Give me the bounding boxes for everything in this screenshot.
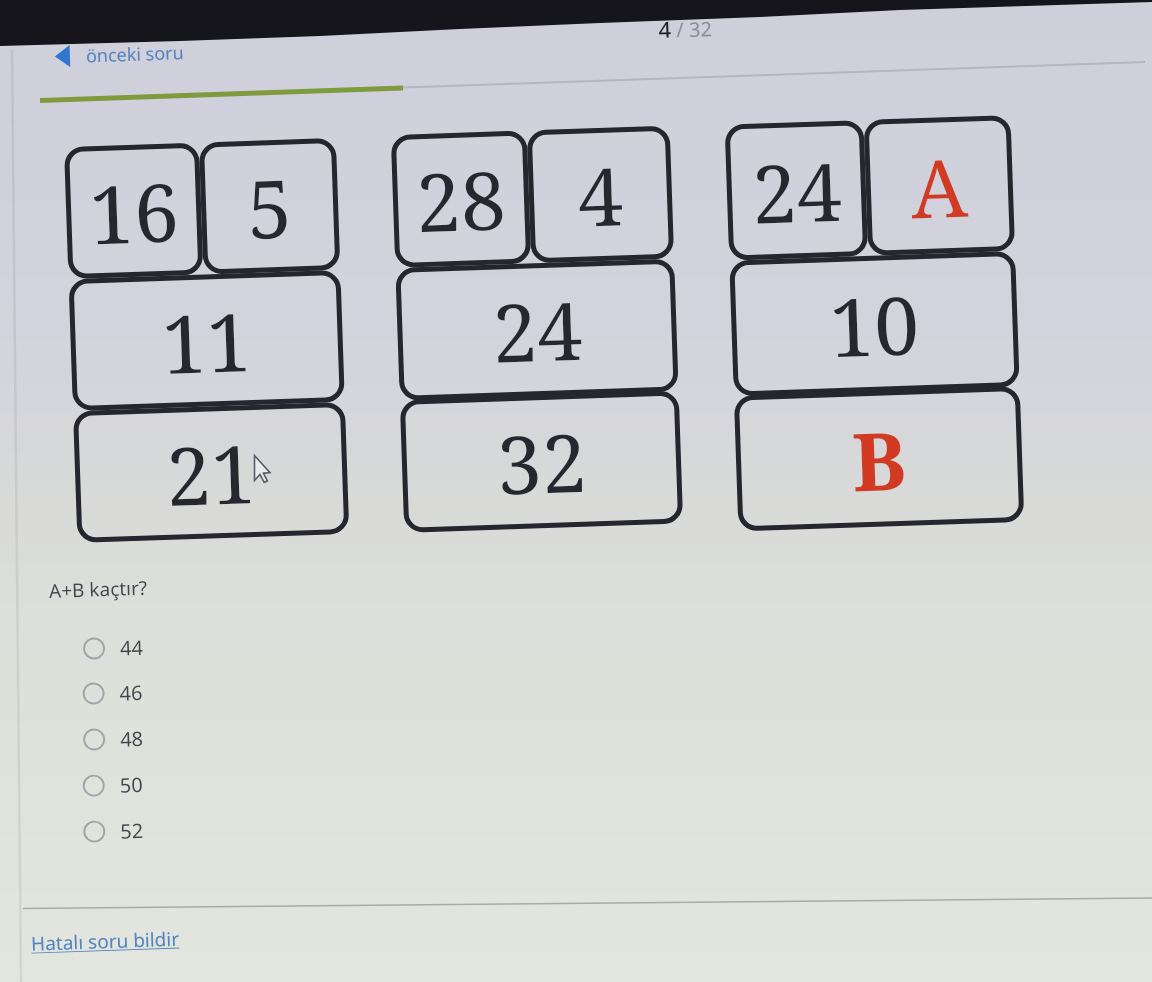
- button[interactable]: A: [863, 115, 1015, 256]
- button[interactable]: 48: [81, 720, 166, 757]
- button[interactable]: 50: [80, 766, 165, 803]
- staticText: 24: [491, 274, 584, 386]
- staticText: 52: [120, 817, 144, 845]
- button[interactable]: 16: [64, 143, 203, 279]
- staticText: 32: [495, 406, 589, 518]
- staticText: 4: [658, 13, 672, 44]
- staticText: B: [850, 404, 908, 515]
- staticText: 24: [750, 135, 844, 247]
- button[interactable]: 11: [68, 270, 345, 411]
- other: Önceki soru: [54, 45, 70, 67]
- button[interactable]: 5: [199, 138, 340, 275]
- button[interactable]: 10: [729, 251, 1020, 397]
- staticText: 21: [164, 417, 258, 529]
- staticText: 4: [576, 139, 625, 250]
- staticText: 10: [828, 268, 921, 380]
- button[interactable]: 24: [395, 258, 679, 401]
- staticText: 28: [414, 143, 508, 255]
- staticText: A: [909, 130, 970, 241]
- staticText: A+B kaçtır?: [49, 575, 148, 604]
- button[interactable]: 44: [80, 629, 166, 666]
- staticText: 50: [119, 771, 143, 799]
- staticText: önceki soru: [85, 40, 184, 68]
- button[interactable]: 32: [400, 390, 683, 533]
- staticText: 16: [87, 155, 181, 267]
- staticText: 44: [120, 634, 143, 662]
- staticText: Hatalı soru bildir: [31, 926, 180, 957]
- button[interactable]: 52: [81, 812, 166, 849]
- button[interactable]: 28: [391, 130, 531, 268]
- button[interactable]: 4: [527, 126, 674, 263]
- staticText: 5: [245, 151, 294, 262]
- button[interactable]: B: [734, 386, 1024, 531]
- button[interactable]: 21: [73, 402, 349, 543]
- button[interactable]: 24: [725, 120, 868, 261]
- button[interactable]: 46: [80, 674, 165, 711]
- staticText: 46: [119, 679, 143, 707]
- staticText: 48: [120, 725, 144, 753]
- button[interactable]: Önceki soru: [54, 38, 184, 70]
- staticText: / 32: [676, 15, 713, 43]
- staticText: 11: [160, 285, 254, 397]
- button[interactable]: Hatalı soru bildir: [31, 926, 180, 957]
